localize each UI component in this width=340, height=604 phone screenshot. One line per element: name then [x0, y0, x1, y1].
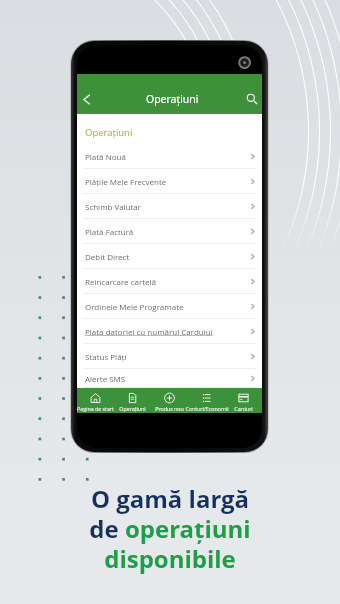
staticText: Pagina de start	[77, 405, 114, 412]
button[interactable]: Plățile Mele Frecvente	[77, 169, 262, 194]
button[interactable]: Conturi/Economii	[188, 391, 225, 410]
button[interactable]: Schimb Valutar	[77, 194, 262, 219]
staticText: Conturi/Economii	[185, 405, 229, 412]
staticText: Debit Direct	[85, 251, 130, 262]
button[interactable]: Produs nou	[151, 391, 188, 410]
button[interactable]: Plata datoriei cu numărul Cardului	[77, 319, 262, 344]
staticText: Plata datoriei cu numărul Cardului	[85, 326, 213, 337]
staticText: Plată Nouă	[85, 151, 126, 162]
staticText: Carduri	[234, 405, 253, 412]
button[interactable]: Plată Factură	[77, 219, 262, 244]
staticText: Produs nou	[155, 405, 184, 412]
staticText: Ordinele Mele Programate	[85, 301, 184, 312]
button[interactable]: Carduri	[225, 391, 262, 410]
staticText: Plățile Mele Frecvente	[85, 176, 167, 187]
button[interactable]: Status Plăți	[77, 344, 262, 369]
staticText: Alerte SMS	[85, 373, 126, 384]
staticText: Reincarcare cartelă	[85, 276, 156, 287]
button[interactable]: Pagina de start	[77, 391, 114, 410]
button[interactable]: Plată Nouă	[77, 144, 262, 169]
button[interactable]: Alerte SMS	[77, 369, 262, 388]
button[interactable]: Ordinele Mele Programate	[77, 294, 262, 319]
staticText: Plată Factură	[85, 226, 134, 237]
button[interactable]: Debit Direct	[77, 244, 262, 269]
staticText: Status Plăți	[85, 351, 127, 362]
button[interactable]: Operațiuni	[114, 391, 151, 410]
staticText: Operațiuni	[85, 126, 133, 139]
staticText: Operațiuni	[146, 92, 199, 106]
button[interactable]: Back	[77, 84, 102, 114]
button[interactable]: Search	[242, 84, 262, 114]
staticText: Operațiuni	[119, 405, 146, 412]
staticText: Schimb Valutar	[85, 201, 142, 212]
staticText: O gamă largă de operațiuni disponibile	[0, 482, 340, 575]
button[interactable]: Reincarcare cartelă	[77, 269, 262, 294]
